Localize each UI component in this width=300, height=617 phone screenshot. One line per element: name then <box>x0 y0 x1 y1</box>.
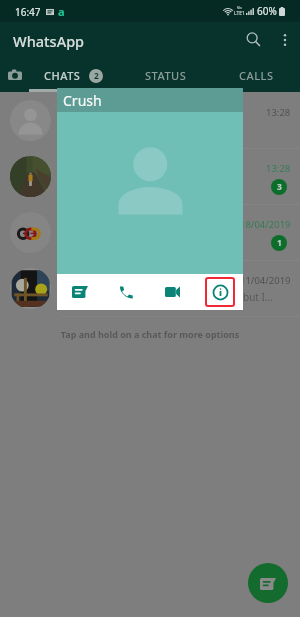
staticText: LTE1 <box>234 10 245 17</box>
button[interactable]: New chat <box>248 563 288 603</box>
staticText: 2 <box>94 70 99 82</box>
staticText: a <box>58 4 65 19</box>
button[interactable]: 13:28 <box>0 93 300 149</box>
staticText: WhatsApp <box>13 31 85 51</box>
button[interactable]: Call <box>103 274 149 310</box>
staticText: CALLS <box>239 68 274 83</box>
button[interactable]: CHATS <box>29 58 117 92</box>
button[interactable]: Video call <box>149 274 196 310</box>
button[interactable]: 11/04/2019 <box>0 261 300 317</box>
staticText: 16:47 <box>15 5 41 19</box>
button[interactable]: Message <box>57 274 103 310</box>
button[interactable]: 18/04/2019 <box>0 205 300 261</box>
button[interactable]: Camera <box>0 58 29 92</box>
staticText: 3 <box>277 181 282 193</box>
button[interactable]: Search <box>239 25 268 54</box>
staticText: but I... <box>243 290 273 304</box>
staticText: 60% <box>257 4 277 18</box>
staticText: Vo <box>237 5 242 10</box>
staticText: Crush <box>63 91 102 110</box>
button[interactable]: More options <box>270 25 299 54</box>
staticText: STATUS <box>145 68 187 83</box>
staticText: 13:28 <box>266 106 291 119</box>
staticText: 11/04/2019 <box>240 274 291 287</box>
staticText: Tap and hold on a chat for more options <box>0 328 300 340</box>
button[interactable]: CALLS <box>215 58 298 92</box>
staticText: 13:28 <box>266 162 291 175</box>
button[interactable]: STATUS <box>117 58 215 92</box>
staticText: 1 <box>277 237 282 249</box>
button[interactable]: 13:28 <box>0 149 300 205</box>
staticText: 18/04/2019 <box>240 218 291 231</box>
staticText: CHATS <box>44 68 81 83</box>
button[interactable]: Contact info <box>205 277 235 307</box>
